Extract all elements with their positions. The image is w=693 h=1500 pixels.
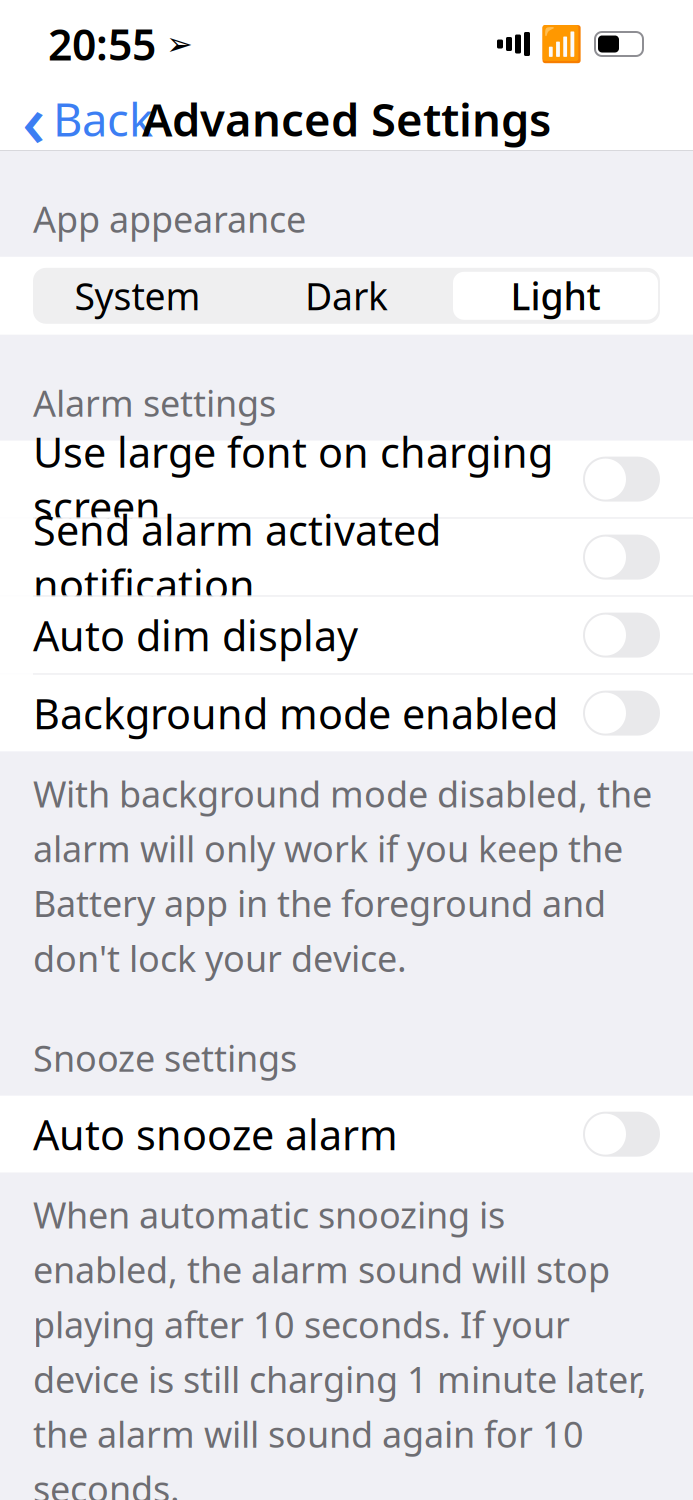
staticText: System [74, 271, 200, 321]
button[interactable]: ‹ [0, 63, 175, 175]
button[interactable]: Send alarm activated notification [0, 519, 693, 596]
staticText: 20:55 [48, 16, 156, 72]
staticText: ‹ [22, 71, 45, 167]
button[interactable]: Background mode enabled [0, 675, 693, 752]
staticText: Dark [305, 271, 388, 321]
staticText: 📶 [540, 24, 583, 64]
staticText: Light [510, 271, 600, 321]
button[interactable]: System [33, 268, 242, 324]
button[interactable]: Auto dim display [0, 597, 693, 674]
button[interactable]: Light [451, 272, 660, 320]
button[interactable]: Use large font on charging screen [0, 441, 693, 518]
button[interactable]: Auto snooze alarm [0, 1096, 693, 1173]
button[interactable]: Dark [242, 268, 451, 324]
staticText: Auto snooze alarm [33, 1107, 398, 1162]
staticText: Auto dim display [33, 608, 358, 663]
staticText: Advanced Settings [142, 89, 551, 149]
staticText: Snooze settings [33, 1034, 297, 1082]
staticText: Alarm settings [33, 379, 276, 427]
staticText: Send alarm activated notification [33, 502, 441, 612]
staticText: App appearance [33, 195, 306, 243]
staticText: Use large font on charging screen [33, 424, 553, 534]
staticText: ➢ [156, 26, 193, 62]
staticText: When automatic snoozing is enabled, the … [33, 1191, 647, 1500]
staticText: Background mode enabled [33, 686, 558, 741]
staticText: Back [53, 89, 153, 149]
staticText: With background mode disabled, the alarm… [33, 770, 652, 982]
